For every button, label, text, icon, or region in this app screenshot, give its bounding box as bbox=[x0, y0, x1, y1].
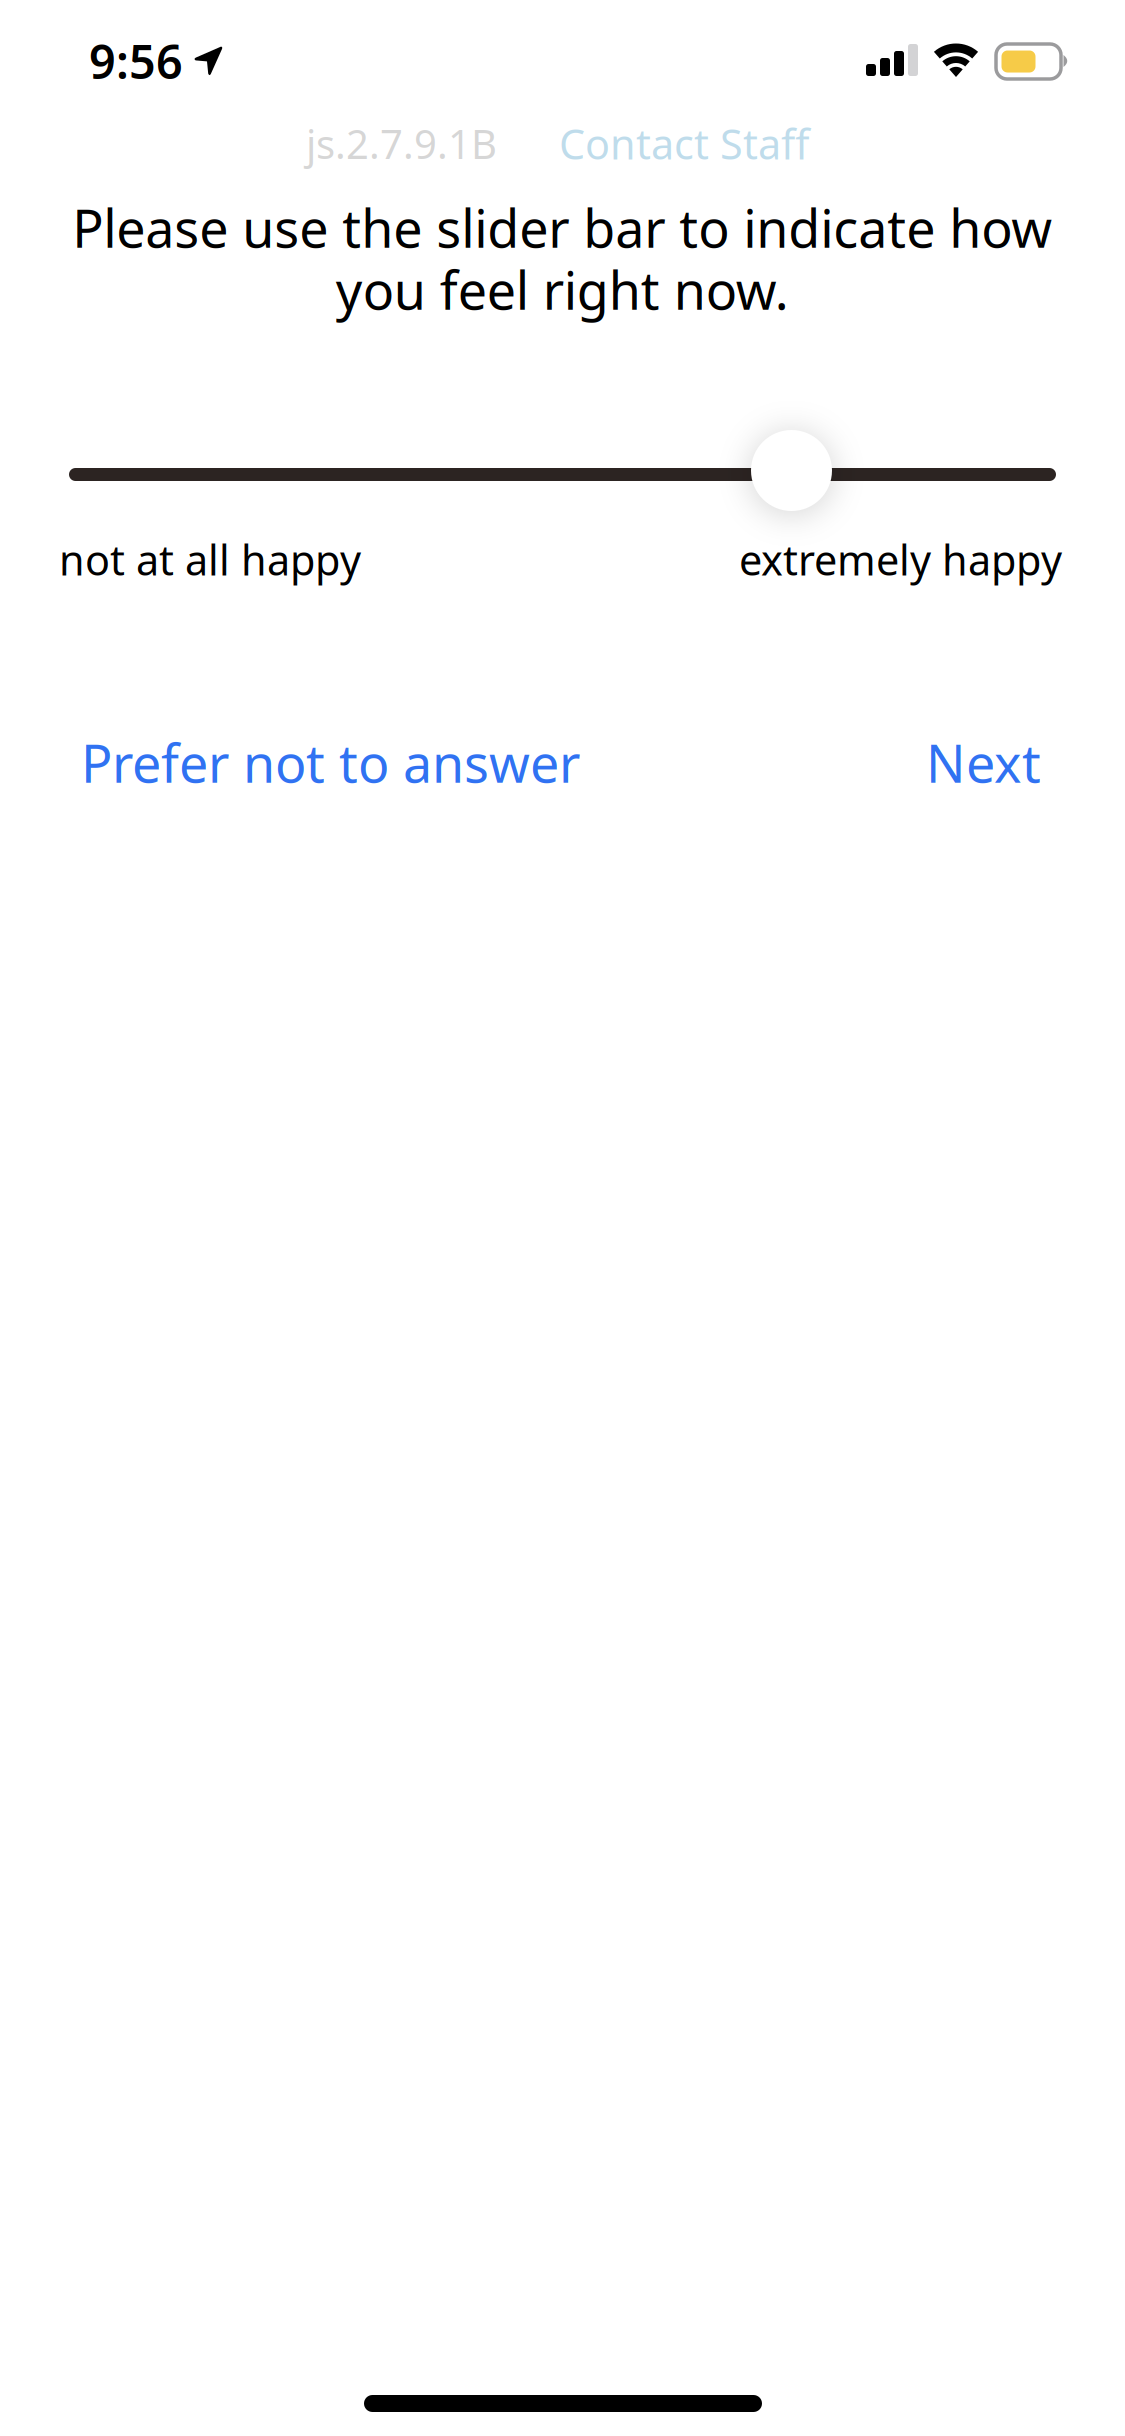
staticText: Contact Staff bbox=[559, 116, 809, 171]
staticText: js.2.7.9.1B bbox=[306, 117, 497, 170]
staticText: not at all happy bbox=[59, 532, 361, 587]
staticText: Please use the slider bar to indicate ho… bbox=[72, 193, 1052, 324]
staticText: Next bbox=[926, 728, 1041, 797]
staticText: Prefer not to answer bbox=[81, 728, 580, 797]
button[interactable]: Contact Staff bbox=[549, 98, 819, 189]
button[interactable]: Next bbox=[926, 704, 1041, 821]
button[interactable]: Prefer not to answer bbox=[81, 704, 580, 821]
staticText: 9:56 bbox=[89, 30, 183, 92]
staticText: extremely happy bbox=[739, 532, 1062, 587]
button[interactable]: Happiness rating slider bbox=[69, 430, 1056, 511]
